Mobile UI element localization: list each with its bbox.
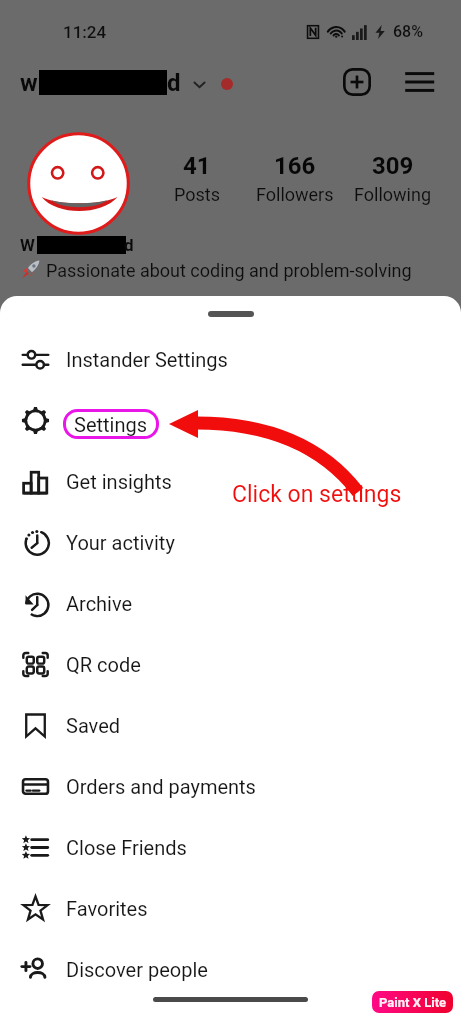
- button[interactable]: Your activity: [0, 512, 461, 573]
- button[interactable]: Close Friends: [0, 817, 461, 878]
- staticText: 309: [372, 152, 414, 180]
- staticText: Paint X Lite: [379, 995, 447, 1010]
- button[interactable]: QR code: [0, 634, 461, 695]
- staticText: Posts: [174, 184, 220, 205]
- button[interactable]: Menu: [396, 59, 442, 105]
- staticText: Discover people: [66, 958, 208, 981]
- staticText: Favorites: [66, 897, 148, 920]
- button[interactable]: Orders and payments: [0, 756, 461, 817]
- staticText: QR code: [66, 653, 141, 676]
- button[interactable]: New post: [334, 59, 380, 105]
- staticText: Click on settings: [232, 481, 402, 508]
- staticText: Archive: [66, 592, 133, 615]
- staticText: Orders and payments: [66, 775, 256, 798]
- staticText: 41: [183, 152, 211, 180]
- staticText: Passionate about coding and problem-solv…: [46, 260, 412, 281]
- staticText: 68%: [393, 22, 423, 41]
- button[interactable]: Saved: [0, 695, 461, 756]
- staticText: Following: [354, 184, 432, 205]
- staticText: Your activity: [66, 531, 175, 554]
- button[interactable]: Favorites: [0, 878, 461, 939]
- staticText: d: [124, 235, 134, 255]
- button[interactable]: Settings: [0, 390, 461, 451]
- staticText: Close Friends: [66, 836, 187, 859]
- staticText: Settings: [74, 413, 148, 436]
- staticText: Saved: [66, 714, 121, 737]
- staticText: Followers: [256, 184, 334, 205]
- staticText: Instander Settings: [66, 348, 228, 371]
- staticText: Get insights: [66, 470, 172, 493]
- button[interactable]: Instander Settings: [0, 329, 461, 390]
- staticText: 166: [274, 152, 316, 180]
- button[interactable]: Archive: [0, 573, 461, 634]
- staticText: d: [167, 69, 181, 97]
- button[interactable]: Discover people: [0, 939, 461, 1000]
- button[interactable]: Get insights: [0, 451, 461, 512]
- staticText: w: [20, 69, 38, 97]
- staticText: W: [20, 235, 35, 255]
- staticText: 11:24: [63, 22, 107, 42]
